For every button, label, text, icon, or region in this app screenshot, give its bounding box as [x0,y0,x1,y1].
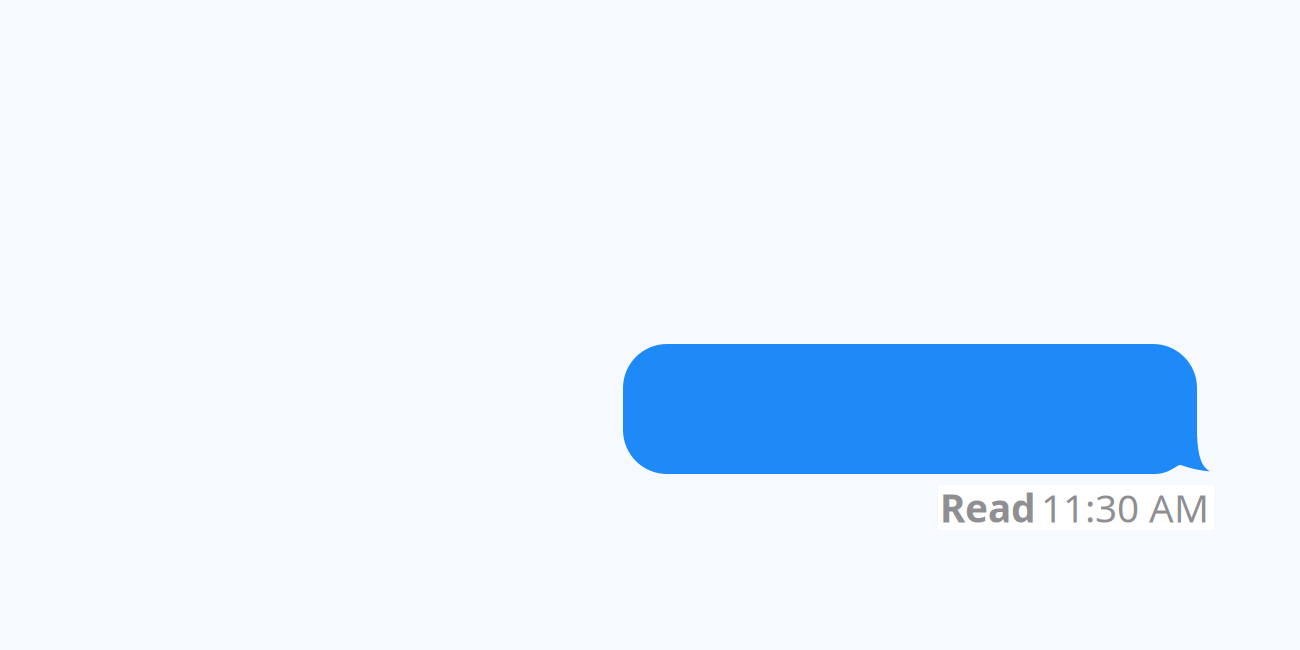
staticText: Read [940,482,1035,533]
staticText: 11:30 AM [1041,482,1209,533]
button[interactable]: Sent message [623,344,1212,474]
